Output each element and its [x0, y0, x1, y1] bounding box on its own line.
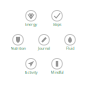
staticText: Steps	[52, 21, 61, 27]
button[interactable]: Fluid	[57, 34, 83, 51]
button[interactable]: Steps	[44, 10, 70, 27]
button[interactable]: Journal	[31, 34, 57, 51]
staticText: Mindful	[50, 69, 63, 75]
staticText: Activity	[24, 69, 37, 75]
staticText: Journal	[38, 45, 50, 51]
button[interactable]: Energy	[18, 10, 44, 27]
staticText: Energy	[25, 21, 37, 27]
staticText: Nutrition	[10, 45, 25, 51]
button[interactable]: Nutrition	[5, 34, 31, 51]
button[interactable]: Mindful	[44, 58, 70, 75]
staticText: Fluid	[66, 45, 74, 51]
button[interactable]: Activity	[18, 58, 44, 75]
